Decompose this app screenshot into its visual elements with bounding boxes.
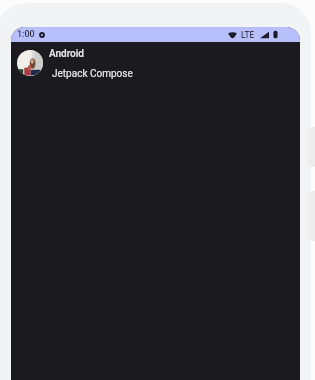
staticText: Android <box>49 48 84 60</box>
button[interactable]: Profile picture <box>11 42 300 88</box>
staticText: Jetpack Compose <box>52 68 133 80</box>
button[interactable]: Profile picture <box>17 50 43 76</box>
staticText: LTE <box>241 30 255 40</box>
staticText: 1:00 <box>17 29 35 40</box>
